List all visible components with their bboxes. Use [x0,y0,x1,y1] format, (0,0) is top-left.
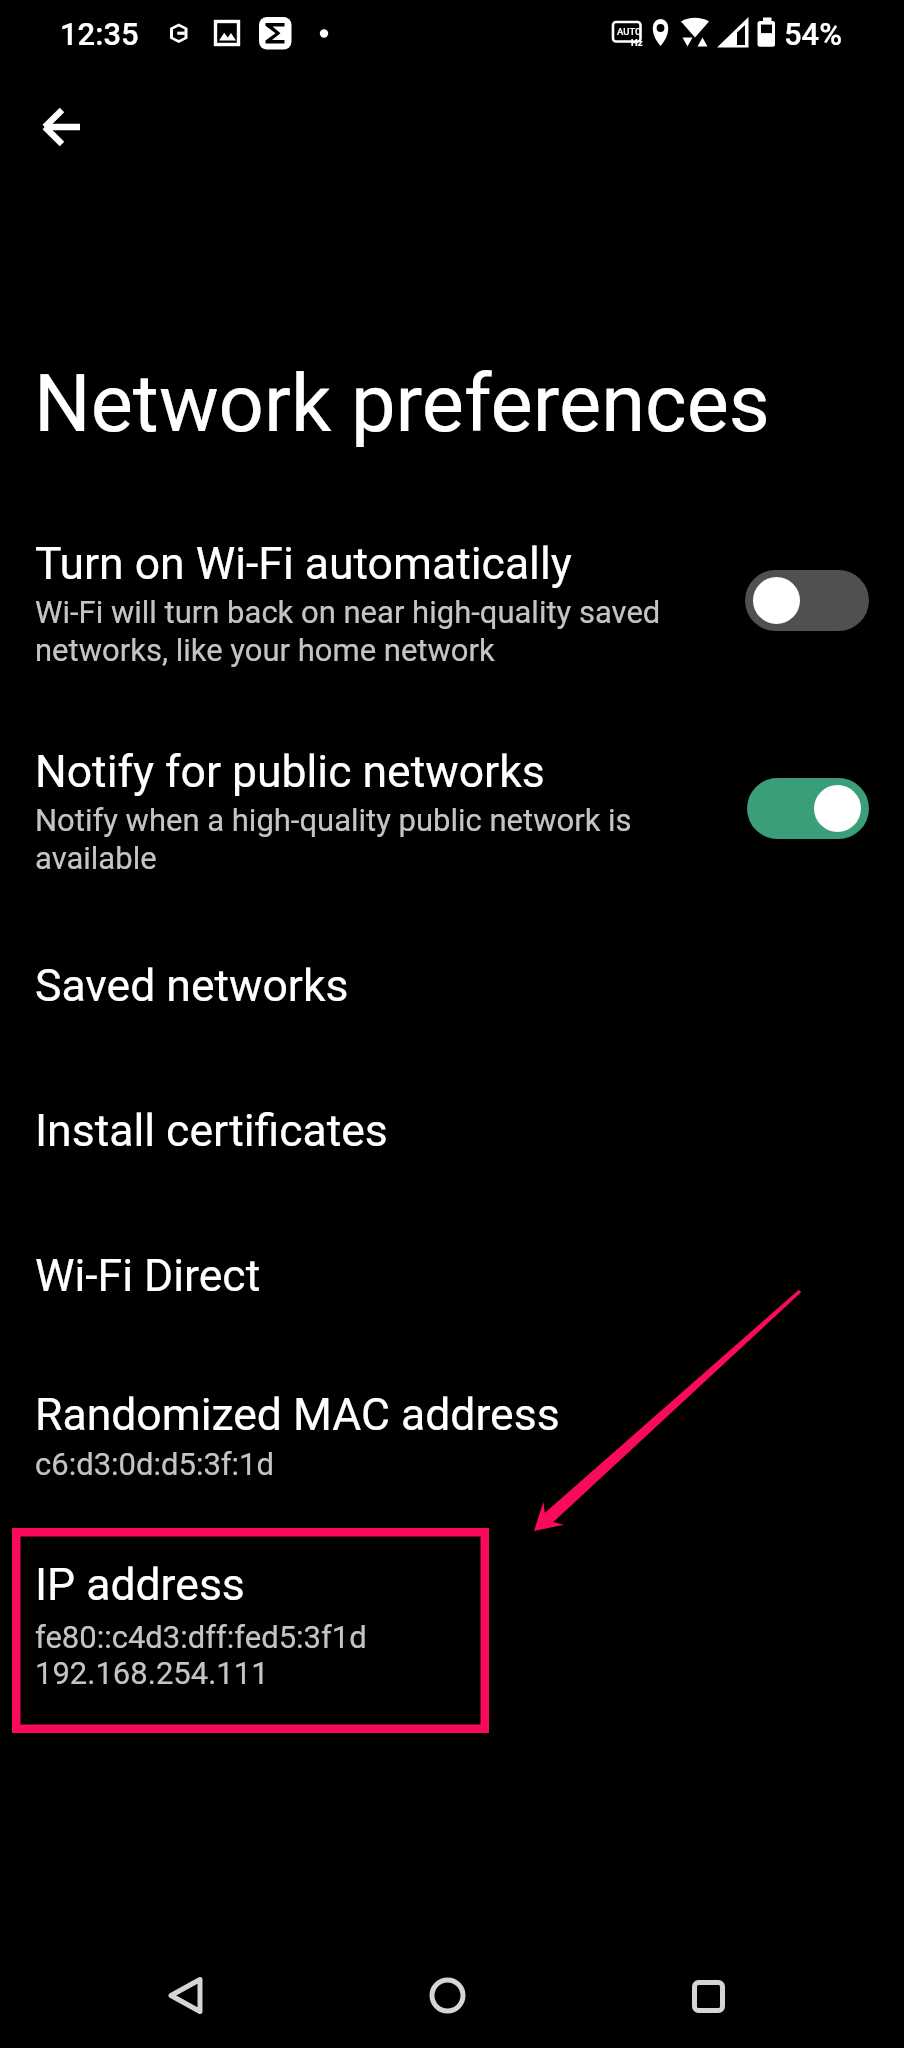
button[interactable]: IP address [0,1528,904,1733]
staticText: Turn on Wi-Fi automatically [35,538,572,590]
staticText: Wi-Fi will turn back on near high-qualit… [35,594,661,630]
button[interactable]: Switch on [747,778,869,839]
button[interactable]: Navigate up [20,85,104,169]
staticText: Install certificates [35,1105,388,1157]
button[interactable]: Recent apps [677,1960,737,2020]
button[interactable]: Switch off [745,570,869,631]
staticText: Wi-Fi Direct [35,1250,261,1302]
button[interactable]: Wi-Fi Direct [0,1220,904,1332]
staticText: fe80::c4d3:dff:fed5:3f1d [35,1619,367,1655]
staticText: Saved networks [35,960,349,1012]
button[interactable]: Saved networks [0,930,904,1042]
button[interactable]: Turn on Wi-Fi automatically [0,512,904,678]
staticText: IP address [35,1559,245,1611]
staticText: 12:35 [60,16,139,52]
staticText: Notify when a high-quality public networ… [35,802,632,838]
button[interactable]: Notify for public networks [0,720,904,886]
staticText: networks, like your home network [35,632,495,668]
button[interactable]: Install certificates [0,1075,904,1187]
staticText: available [35,840,157,876]
button[interactable]: Back [155,1960,215,2020]
button[interactable]: Randomized MAC address [0,1360,904,1500]
staticText: Network preferences [34,357,770,450]
staticText: 54% [784,16,843,52]
staticText: Randomized MAC address [35,1389,560,1441]
staticText: Notify for public networks [35,746,545,798]
staticText: c6:d3:0d:d5:3f:1d [35,1446,275,1482]
staticText: AUTO [617,26,642,37]
button[interactable]: Home [417,1960,477,2020]
staticText: Hz [631,37,643,48]
staticText: 192.168.254.111 [35,1655,269,1691]
